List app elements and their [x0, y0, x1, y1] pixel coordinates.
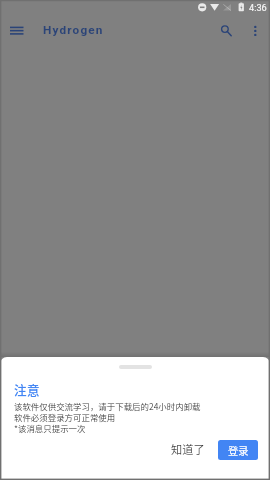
button[interactable]: More options: [246, 20, 264, 38]
staticText: 注意: [14, 380, 41, 398]
staticText: 知道了: [171, 441, 205, 457]
button[interactable]: Search: [215, 20, 235, 40]
staticText: 该软件仅供交流学习，请于下载后的24小时内卸载 软件必须登录方可正常使用 *该消…: [14, 400, 201, 434]
button[interactable]: 知道了: [165, 437, 210, 461]
button[interactable]: 登录: [218, 440, 258, 460]
staticText: 登录: [228, 443, 249, 458]
staticText: 4:36: [249, 2, 267, 13]
button[interactable]: Open navigation menu: [6, 20, 26, 40]
staticText: Hydrogen: [43, 23, 104, 37]
